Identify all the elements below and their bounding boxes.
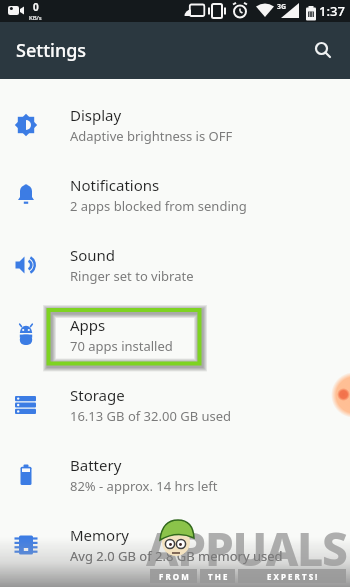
staticText: F R O M [159,571,189,582]
button[interactable]: Sound [0,230,350,300]
staticText: Ringer set to vibrate [70,267,194,285]
staticText: 2 apps blocked from sending [70,197,247,215]
button[interactable]: Display [0,90,350,160]
staticText: 82% - approx. 14 hrs left [70,477,218,495]
staticText: Avg 2.0 GB of 2.8 GB memory used [70,547,283,565]
staticText: Display [70,105,122,125]
button[interactable]: Memory [0,510,350,580]
staticText: APPUALS [146,517,347,580]
staticText: Memory [70,525,130,545]
staticText: Settings [16,38,87,63]
staticText: Storage [70,385,125,405]
staticText: 0 [33,0,39,14]
staticText: T H E [208,571,228,582]
staticText: Sound [70,245,116,265]
button[interactable] [311,39,335,63]
staticText: 3G [277,2,287,12]
staticText: Battery [70,455,122,475]
staticText: Avg 2.0 GB of 2.8 GB memory used [70,547,283,565]
button[interactable]: Storage [0,370,350,440]
staticText: KB/s [29,14,42,22]
button[interactable]: Apps [0,300,350,370]
staticText: E X P E R T S ! [267,571,318,582]
staticText: Adaptive brightness is OFF [70,127,233,145]
button[interactable]: Notifications [0,160,350,230]
staticText: Apps [70,315,106,335]
staticText: Notifications [70,175,160,195]
staticText: 70 apps installed [70,337,173,355]
staticText: 1:37 [319,2,345,20]
staticText: 16.13 GB of 32.00 GB used [70,407,232,425]
button[interactable]: Battery [0,440,350,510]
